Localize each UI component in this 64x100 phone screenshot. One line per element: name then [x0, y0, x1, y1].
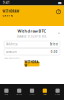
staticText: WITHDRAW [2, 10, 19, 13]
button[interactable]: Close [57, 31, 61, 35]
button[interactable]: WITHDRAW [24, 61, 39, 66]
button[interactable]: Markets [13, 84, 26, 100]
staticText: Profile [55, 94, 60, 95]
button[interactable]: Trade [26, 84, 38, 100]
staticText: ? [58, 10, 59, 13]
staticText: ▮▮▮ [58, 1, 61, 4]
staticText: Select [50, 42, 58, 46]
staticText: Amount [6, 50, 17, 54]
staticText: Network fee 0.0005 BTC [4, 57, 20, 59]
button[interactable]: Amount [0, 49, 64, 55]
staticText: ✕ [58, 32, 60, 35]
staticText: Address [6, 42, 17, 46]
staticText: Wallet [43, 94, 46, 95]
staticText: 9:41 [3, 1, 10, 4]
staticText: 0.00 [51, 50, 58, 54]
staticText: CRYPTO [2, 14, 13, 17]
button[interactable]: Profile [51, 84, 64, 100]
staticText: Withdraw BTC [17, 28, 46, 34]
staticText: WITHDRAW [24, 60, 39, 67]
staticText: Home [4, 94, 8, 95]
button[interactable]: Address [0, 41, 64, 47]
button[interactable]: Wallet [38, 84, 51, 100]
button[interactable]: Home [0, 84, 13, 100]
staticText: Trade [29, 94, 34, 95]
staticText: Balance 0.02418 BTC [17, 35, 47, 38]
staticText: Markets [16, 94, 22, 95]
button[interactable]: Help [56, 10, 61, 14]
